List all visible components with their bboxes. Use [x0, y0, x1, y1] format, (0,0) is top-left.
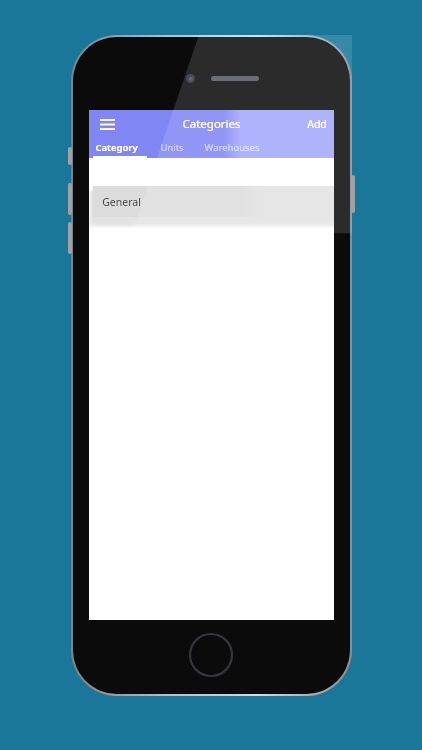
staticText: Warehouses [204, 141, 260, 154]
button[interactable]: Warehouses [204, 141, 260, 154]
staticText: Add [307, 117, 327, 131]
button[interactable]: Menu [94, 111, 120, 137]
staticText: General [102, 195, 141, 209]
button[interactable]: General [93, 186, 334, 217]
staticText: Units [160, 141, 184, 154]
button[interactable]: Units [160, 141, 184, 154]
button[interactable]: Add [307, 117, 327, 131]
staticText: Category [95, 141, 138, 154]
staticText: Categories [182, 116, 241, 132]
button[interactable]: Category [95, 141, 138, 154]
